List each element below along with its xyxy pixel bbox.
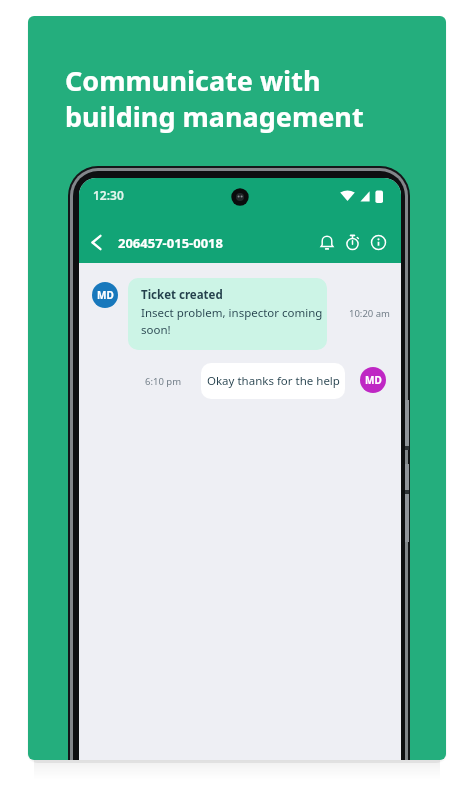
button[interactable]: Okay thanks for the help	[201, 363, 345, 399]
staticText: 12:30	[93, 187, 124, 203]
staticText: 6:10 pm	[145, 375, 182, 388]
button[interactable]	[85, 231, 107, 253]
staticText: 206457-015-0018	[118, 234, 223, 252]
staticText: Ticket created	[141, 287, 223, 303]
staticText: Okay thanks for the help	[207, 373, 340, 389]
staticText: Communicate with building management	[65, 62, 364, 135]
staticText: 10:20 am	[349, 307, 390, 320]
staticText: MD	[97, 288, 114, 302]
staticText: Insect problem, inspector coming soon!	[141, 305, 323, 338]
button[interactable]	[367, 231, 390, 254]
button[interactable]: Ticket created	[128, 278, 327, 350]
button[interactable]	[341, 231, 364, 254]
staticText: MD	[365, 373, 382, 387]
button[interactable]	[315, 231, 338, 254]
